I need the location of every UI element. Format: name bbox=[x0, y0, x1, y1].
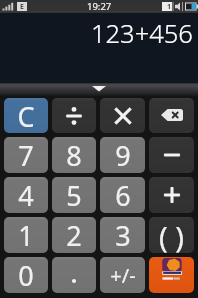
button[interactable]: 8 bbox=[52, 137, 96, 173]
staticText: E bbox=[20, 2, 24, 12]
staticText: 9 bbox=[115, 137, 131, 173]
staticText: 123+456 bbox=[91, 16, 193, 51]
button[interactable]: Divide bbox=[52, 98, 96, 133]
staticText: 1 bbox=[18, 217, 34, 253]
button[interactable]: 7 bbox=[4, 137, 48, 173]
staticText: 2 bbox=[66, 217, 82, 253]
button[interactable]: Add bbox=[149, 177, 194, 213]
button[interactable]: Advertisement bbox=[149, 257, 194, 293]
button[interactable]: 1 bbox=[4, 217, 48, 253]
button[interactable]: Subtract bbox=[149, 137, 194, 173]
button[interactable]: 6 bbox=[100, 177, 145, 213]
staticText: 8 bbox=[66, 137, 82, 173]
button[interactable]: Delete bbox=[149, 98, 194, 133]
button[interactable]: 5 bbox=[52, 177, 96, 213]
button[interactable]: +/- bbox=[100, 257, 145, 293]
button[interactable]: 2 bbox=[52, 217, 96, 253]
staticText: 7 bbox=[18, 137, 34, 173]
button[interactable]: 3 bbox=[100, 217, 145, 253]
staticText: 19:27 bbox=[87, 0, 112, 13]
button[interactable]: 9 bbox=[100, 137, 145, 173]
button[interactable]: ( ) bbox=[149, 217, 194, 253]
staticText: 1 bbox=[167, 2, 172, 12]
button[interactable]: Collapse keypad bbox=[0, 83, 198, 96]
staticText: C bbox=[17, 98, 35, 133]
staticText: +/- bbox=[110, 262, 136, 289]
button[interactable]: C bbox=[4, 98, 48, 133]
button[interactable]: Multiply bbox=[100, 98, 145, 133]
button[interactable]: 4 bbox=[4, 177, 48, 213]
staticText: 0 bbox=[18, 257, 34, 293]
button[interactable]: Decimal point bbox=[52, 257, 96, 293]
staticText: ( ) bbox=[159, 217, 184, 253]
staticText: 5 bbox=[66, 177, 82, 213]
staticText: 3 bbox=[115, 217, 131, 253]
staticText: 6 bbox=[115, 177, 131, 213]
staticText: 4 bbox=[18, 177, 34, 213]
button[interactable]: 0 bbox=[4, 257, 48, 293]
